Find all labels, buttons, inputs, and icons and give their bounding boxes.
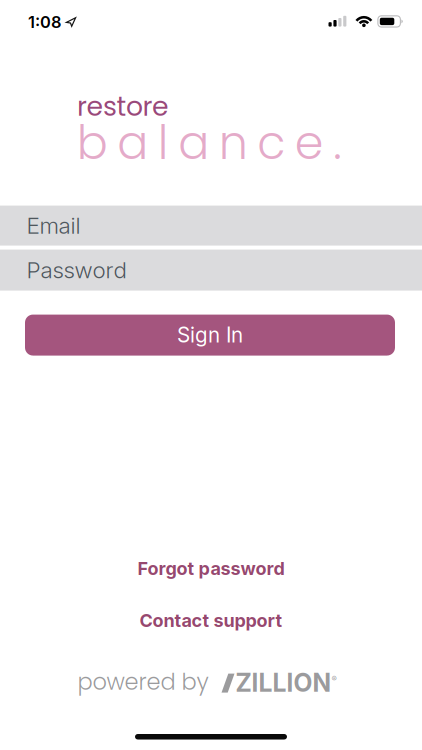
button[interactable]: Sign In <box>25 315 395 356</box>
staticText: restore <box>77 88 169 125</box>
secureTextField[interactable]: Password <box>0 250 422 291</box>
staticText: Email <box>26 212 80 239</box>
button[interactable]: Forgot password <box>137 558 284 580</box>
staticText: 1:08 <box>28 12 61 32</box>
staticText: ® <box>331 674 336 684</box>
button[interactable]: Contact support <box>139 610 282 632</box>
staticText: balance. <box>77 111 341 175</box>
staticText: Forgot password <box>137 558 284 579</box>
staticText: ZILLION <box>235 668 331 698</box>
staticText: Sign In <box>177 323 243 348</box>
staticText: Contact support <box>139 610 282 631</box>
staticText: Password <box>26 256 126 284</box>
staticText: powered by <box>77 666 214 698</box>
textField[interactable]: Email <box>0 206 422 246</box>
